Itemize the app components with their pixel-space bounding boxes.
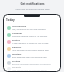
staticText: Get notifications — [20, 2, 45, 6]
staticText: Your package arrives today before 5pm — [12, 49, 49, 52]
staticText: System — [12, 60, 21, 63]
staticText: Backup completed overnight successfully — [12, 63, 51, 66]
button[interactable]: System — [7, 59, 59, 66]
staticText: Alex Romero — [12, 25, 27, 28]
button[interactable]: Delivery — [7, 45, 59, 52]
staticText: Hey, are we still on for later tonight? — [12, 28, 46, 31]
staticText: A new memory is ready for you to view — [12, 42, 49, 45]
staticText: Standup meeting starts in 10 minutes — [12, 35, 48, 38]
staticText: Never miss an important update again — [15, 8, 50, 11]
staticText: New sign-in from an unknown device — [12, 69, 47, 72]
staticText: Today — [6, 18, 15, 22]
button[interactable]: Alex Romero — [7, 24, 59, 31]
button[interactable]: Calendar — [7, 31, 59, 38]
staticText: Calendar — [12, 32, 23, 35]
staticText: Photos — [12, 39, 20, 42]
button[interactable]: Photos — [7, 38, 59, 45]
button[interactable]: Security — [7, 66, 59, 72]
button[interactable]: Weather — [7, 52, 59, 59]
staticText: Security — [12, 66, 22, 69]
staticText: Rain expected later this evening here — [12, 56, 47, 59]
staticText: Weather — [12, 53, 22, 56]
staticText: Delivery — [12, 46, 22, 49]
